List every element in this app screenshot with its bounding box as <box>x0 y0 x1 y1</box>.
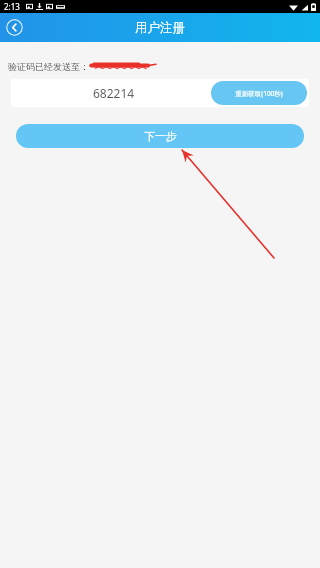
button[interactable]: 下一步 <box>16 124 304 148</box>
button[interactable]: 682214 <box>11 79 309 107</box>
staticText: 重新获取(100秒) <box>235 89 283 98</box>
staticText: 验证码已经发送至： <box>8 61 89 72</box>
staticText: 用户注册 <box>135 20 185 36</box>
button[interactable]: Back <box>6 19 23 36</box>
staticText: 682214 <box>93 85 135 101</box>
button[interactable]: 重新获取(100秒) <box>211 81 307 105</box>
staticText: 下一步 <box>144 129 177 143</box>
staticText: 2:13 <box>4 1 20 12</box>
